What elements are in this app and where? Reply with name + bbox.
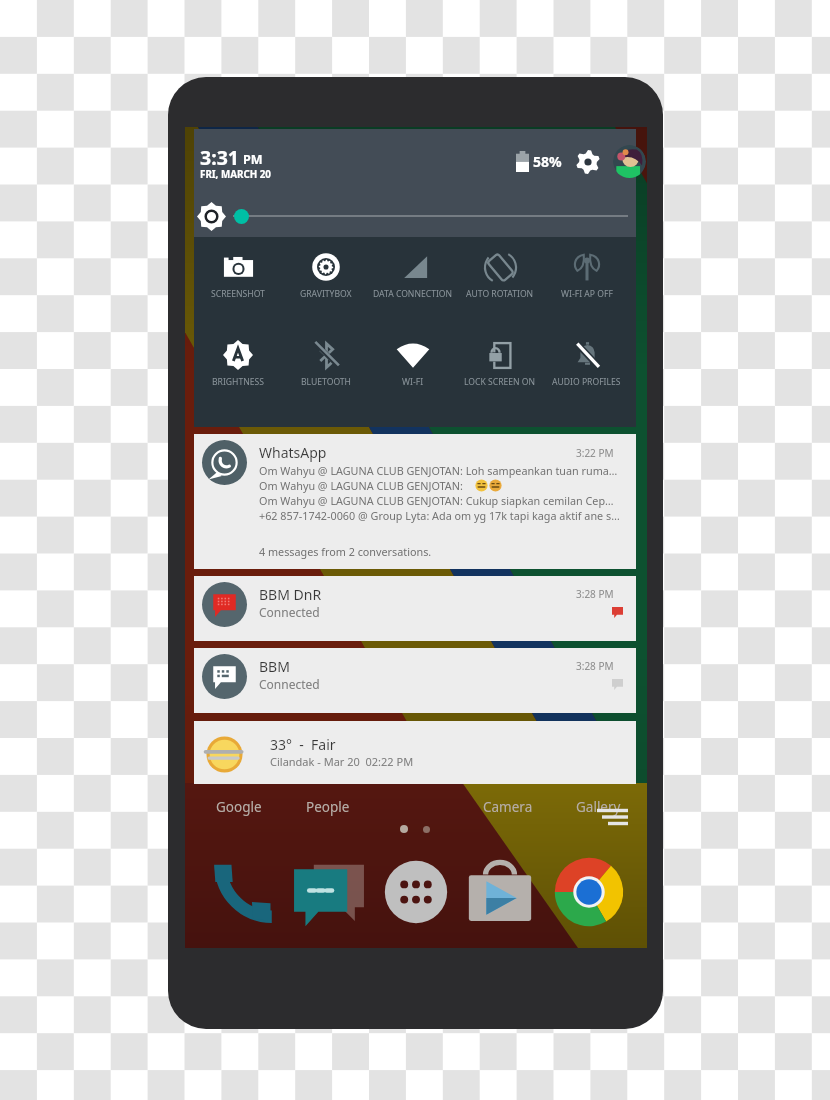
button[interactable]: Brightness xyxy=(197,202,226,231)
button[interactable]: Chrome xyxy=(551,854,627,930)
staticText: Google xyxy=(216,798,262,816)
staticText: DATA CONNECTION xyxy=(373,288,453,300)
staticText: FRI, MARCH 20 xyxy=(200,168,271,181)
staticText: 58% xyxy=(533,152,562,171)
staticText: 3:28 PM xyxy=(576,659,614,673)
button[interactable]: Menu xyxy=(596,808,629,826)
button[interactable]: AUTO ROTATION xyxy=(456,250,543,300)
staticText: Connected xyxy=(259,676,320,692)
button[interactable]: DATA CONNECTION xyxy=(369,250,456,300)
staticText: BBM xyxy=(259,657,290,676)
staticText: Cilandak - Mar 20 02:22 PM xyxy=(270,754,414,769)
button[interactable]: 33° - Fair xyxy=(194,721,636,784)
staticText: 3:22 PM xyxy=(576,446,614,460)
button[interactable]: Profile xyxy=(613,145,646,178)
button[interactable]: BLUETOOTH xyxy=(282,338,369,388)
staticText: Om Wahyu @ LAGUNA CLUB GENJOTAN: Loh sam… xyxy=(259,463,618,478)
staticText: Om Wahyu @ LAGUNA CLUB GENJOTAN: Cukup s… xyxy=(259,493,614,508)
button[interactable]: AUDIO PROFILES xyxy=(543,338,630,388)
staticText: +62 857-1742-0060 @ Group Lyta: Ada om y… xyxy=(259,508,620,523)
staticText: Connected xyxy=(259,604,320,620)
staticText: 3:28 PM xyxy=(576,587,614,601)
button[interactable]: GRAVITYBOX xyxy=(282,250,369,300)
button[interactable]: All apps xyxy=(378,854,454,930)
staticText: PM xyxy=(243,151,263,168)
staticText: WI-FI xyxy=(402,376,424,388)
staticText: Camera xyxy=(483,798,533,816)
button[interactable]: LOCK SCREEN ON xyxy=(456,338,543,388)
staticText: Om Wahyu @ LAGUNA CLUB GENJOTAN: xyxy=(259,478,466,493)
staticText: LOCK SCREEN ON xyxy=(464,376,536,388)
button[interactable]: WI-FI AP OFF xyxy=(543,250,630,300)
button[interactable]: Messages xyxy=(291,854,367,930)
button[interactable]: BBM xyxy=(194,648,636,713)
button[interactable]: SCREENSHOT xyxy=(194,250,282,300)
staticText: Gallery xyxy=(576,798,621,816)
staticText: BBM DnR xyxy=(259,585,322,604)
staticText: GRAVITYBOX xyxy=(300,288,352,300)
button[interactable]: Play Store xyxy=(462,854,538,930)
button[interactable]: Phone xyxy=(211,861,273,923)
button[interactable]: WI-FI xyxy=(369,338,456,388)
staticText: AUDIO PROFILES xyxy=(552,376,621,388)
staticText: BRIGHTNESS xyxy=(212,376,264,388)
staticText: BLUETOOTH xyxy=(301,376,351,388)
staticText: SCREENSHOT xyxy=(211,288,265,300)
staticText: WhatsApp xyxy=(259,443,327,462)
button[interactable]: Settings xyxy=(576,150,600,174)
button[interactable]: BBM DnR xyxy=(194,576,636,641)
staticText: 4 messages from 2 conversations. xyxy=(259,544,432,559)
button[interactable]: WhatsApp xyxy=(194,434,636,569)
button[interactable]: BRIGHTNESS xyxy=(194,338,282,388)
staticText: People xyxy=(306,798,350,816)
staticText: 3:31 xyxy=(200,144,239,171)
staticText: 33° - Fair xyxy=(270,735,336,754)
staticText: AUTO ROTATION xyxy=(466,288,534,300)
staticText: WI-FI AP OFF xyxy=(561,288,613,300)
